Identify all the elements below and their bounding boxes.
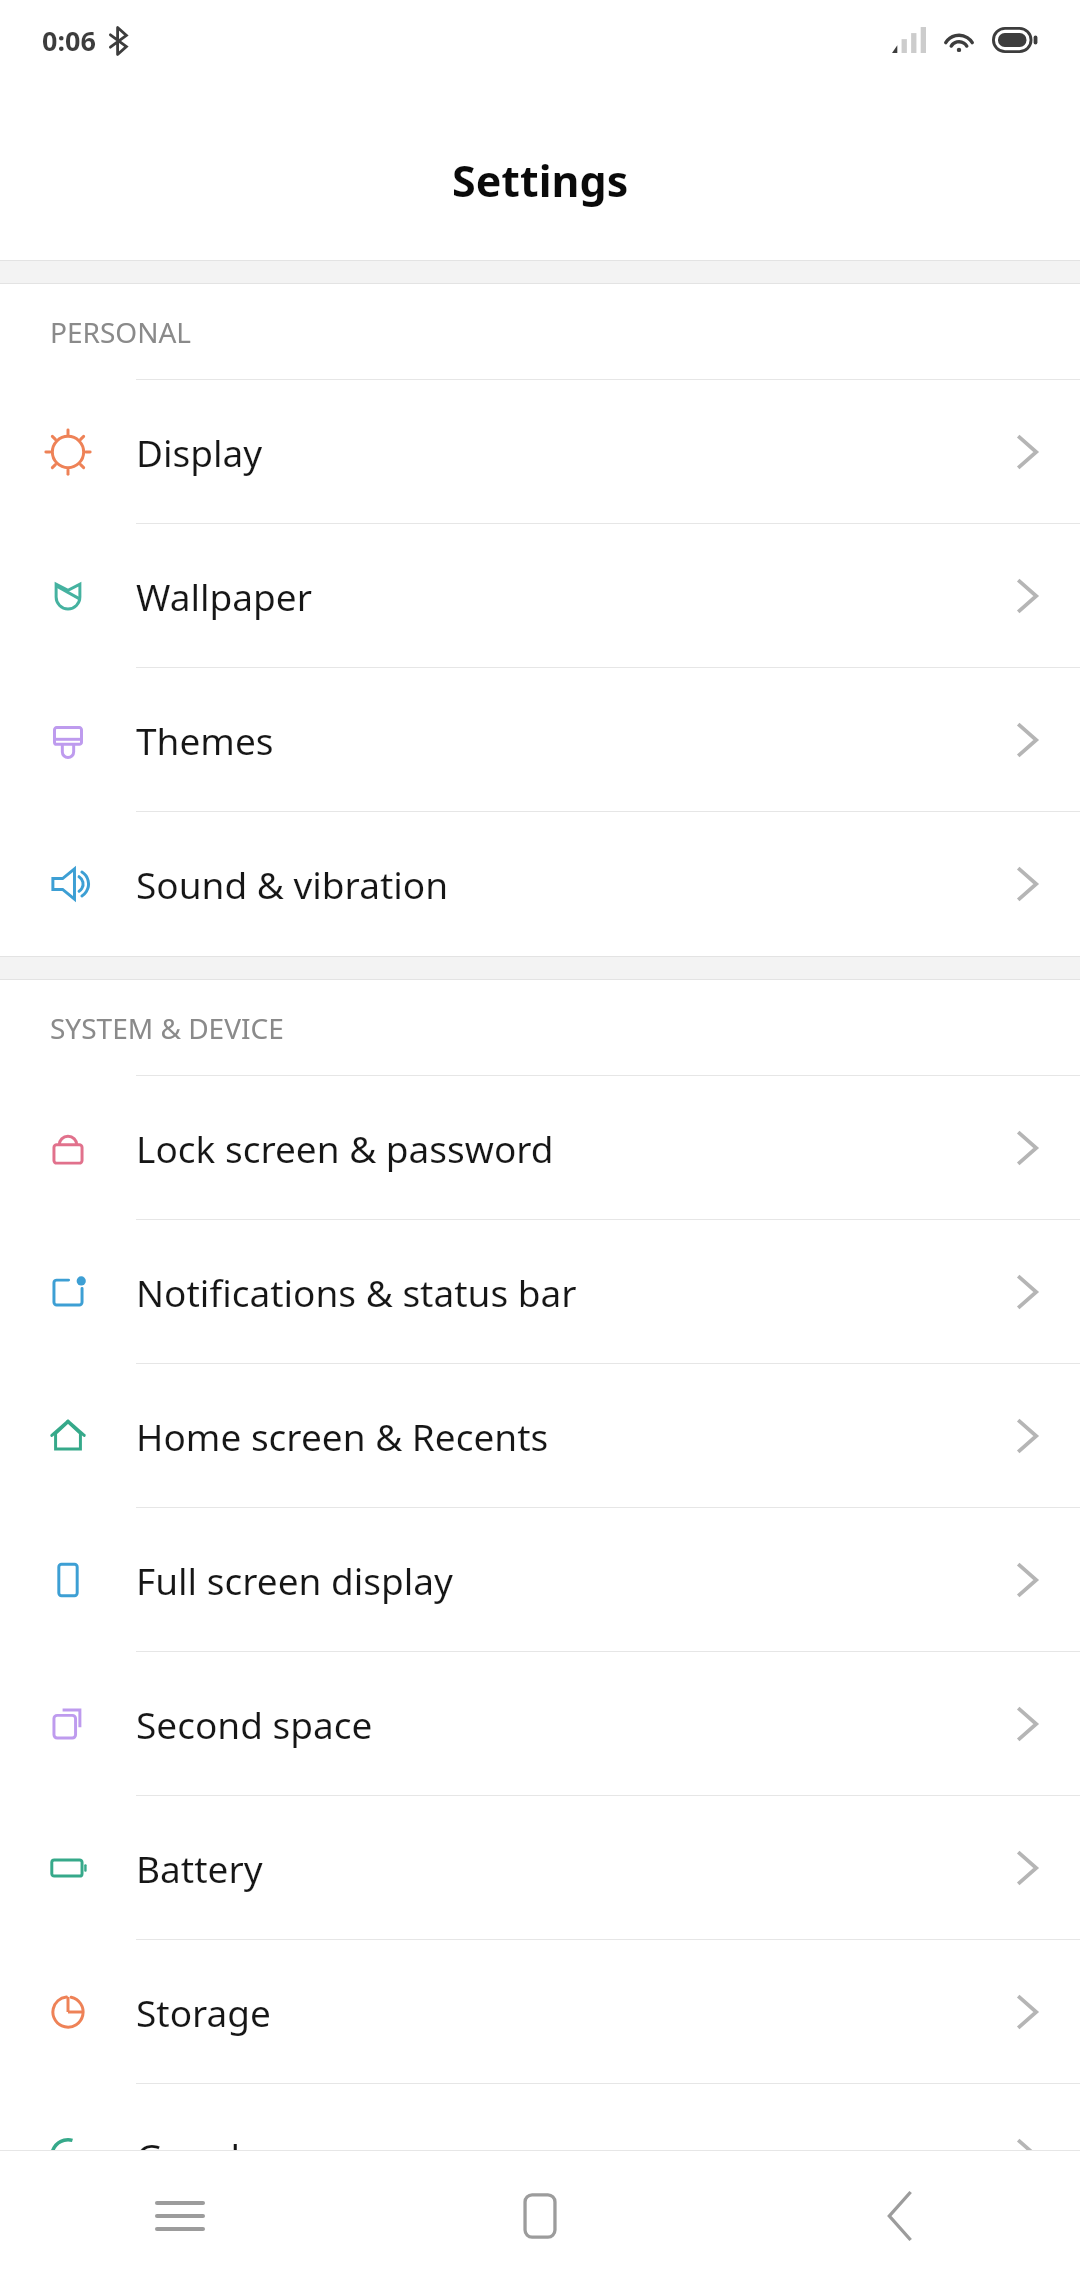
staticText: PERSONAL (50, 313, 192, 351)
staticText: Settings (452, 151, 629, 210)
button[interactable]: Menu (0, 2151, 360, 2280)
staticText: Storage (136, 1987, 974, 2037)
button[interactable]: Battery (0, 1796, 1080, 1940)
button[interactable]: Lock screen & password (0, 1076, 1080, 1220)
staticText: Full screen display (136, 1555, 974, 1605)
other: Full screen (974, 1508, 1080, 1651)
other: Notifications (974, 1220, 1080, 1363)
other: Lock (974, 1076, 1080, 1219)
staticText: Second space (136, 1699, 974, 1749)
other: Battery (974, 1796, 1080, 1939)
button[interactable]: Full screen display (0, 1508, 1080, 1652)
other: Home (974, 1364, 1080, 1507)
staticText: SYSTEM & DEVICE (50, 1009, 284, 1047)
staticText: Home screen & Recents (136, 1411, 974, 1461)
button[interactable]: Themes (0, 668, 1080, 812)
button[interactable]: Google (0, 2084, 1080, 2228)
staticText: Themes (136, 715, 974, 765)
button[interactable]: Home (360, 2151, 720, 2280)
button[interactable]: Home screen & Recents (0, 1364, 1080, 1508)
button[interactable]: Storage (0, 1940, 1080, 2084)
other: Wallpaper (974, 524, 1080, 667)
other: Storage (974, 1940, 1080, 2083)
button[interactable]: Second space (0, 1652, 1080, 1796)
other: Themes (974, 668, 1080, 811)
other: Second space (974, 1652, 1080, 1795)
staticText: 0:06 (42, 22, 96, 59)
other: Sound (974, 812, 1080, 956)
staticText: Battery (136, 1843, 974, 1893)
staticText: Wallpaper (136, 571, 974, 621)
other: Display (974, 380, 1080, 523)
other: Google (974, 2084, 1080, 2227)
button[interactable]: Back (720, 2151, 1080, 2280)
button[interactable]: Notifications & status bar (0, 1220, 1080, 1364)
staticText: Notifications & status bar (136, 1267, 974, 1317)
staticText: Display (136, 427, 974, 477)
staticText: Google (136, 2131, 974, 2181)
staticText: Sound & vibration (136, 859, 974, 909)
button[interactable]: Wallpaper (0, 524, 1080, 668)
button[interactable]: Display (0, 380, 1080, 524)
staticText: Lock screen & password (136, 1123, 974, 1173)
button[interactable]: Sound & vibration (0, 812, 1080, 956)
